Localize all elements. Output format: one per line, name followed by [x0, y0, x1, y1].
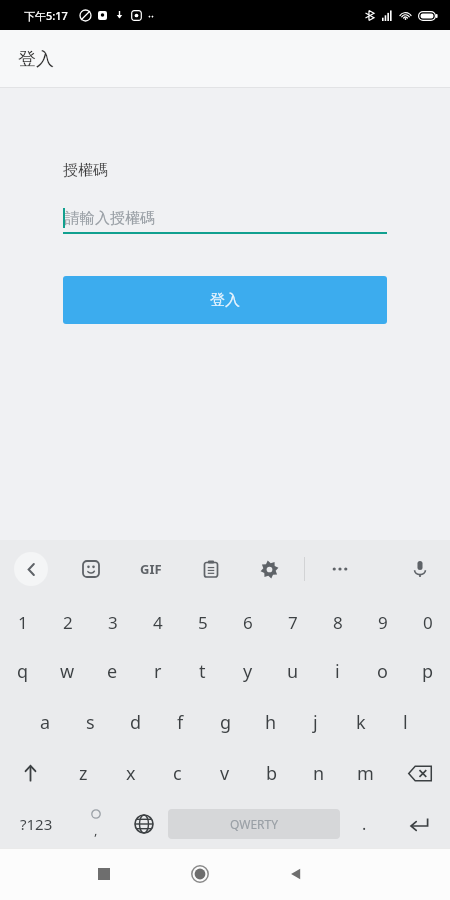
button[interactable]: Enter [388, 799, 450, 848]
staticText: . [362, 813, 367, 835]
button[interactable]: b [248, 748, 295, 799]
staticText: m [357, 761, 374, 786]
button[interactable]: f [158, 697, 203, 748]
staticText: ?123 [20, 814, 53, 834]
button[interactable]: Home [178, 852, 222, 896]
button[interactable]: p [405, 646, 450, 697]
staticText: t [199, 659, 206, 684]
staticText: e [107, 659, 118, 684]
staticText: q [17, 659, 29, 684]
button[interactable]: u [270, 646, 315, 697]
staticText: v [220, 761, 230, 786]
button[interactable]: Sticker [76, 554, 106, 584]
staticText: 4 [153, 611, 163, 634]
button[interactable]: e [90, 646, 135, 697]
staticText: o [377, 659, 388, 684]
button[interactable]: 7 [270, 598, 315, 646]
button[interactable]: 2 [45, 598, 90, 646]
button[interactable]: Shift [0, 748, 60, 799]
staticText: a [40, 710, 51, 735]
staticText: 5 [198, 611, 208, 634]
staticText: j [313, 710, 318, 735]
staticText: 授權碼 [63, 161, 108, 180]
button[interactable]: 6 [225, 598, 270, 646]
button[interactable]: a [22, 697, 68, 748]
button[interactable]: 0 [405, 598, 450, 646]
button[interactable]: j [293, 697, 338, 748]
button[interactable]: More options [325, 554, 355, 584]
button[interactable]: 9 [360, 598, 405, 646]
button[interactable]: q [0, 646, 45, 697]
staticText: s [86, 710, 95, 735]
button[interactable]: Backspace [389, 748, 450, 799]
button[interactable]: Change keyboard language [120, 799, 168, 848]
button[interactable]: ?123 [0, 799, 72, 848]
button[interactable]: GIF [134, 552, 168, 586]
staticText: b [266, 761, 278, 786]
staticText: p [422, 659, 434, 684]
button[interactable]: 5 [180, 598, 225, 646]
button[interactable]: c [154, 748, 201, 799]
staticText: x [126, 761, 136, 786]
button[interactable]: Back [274, 852, 318, 896]
button[interactable]: Emoji [72, 799, 120, 848]
staticText: 1 [18, 611, 28, 634]
button[interactable]: w [45, 646, 90, 697]
staticText: GIF [140, 560, 162, 578]
staticText: f [177, 710, 184, 735]
button[interactable]: o [360, 646, 405, 697]
button[interactable]: d [113, 697, 158, 748]
button[interactable]: l [383, 697, 428, 748]
staticText: 6 [243, 611, 253, 634]
button[interactable]: Settings [254, 554, 284, 584]
staticText: ·· [148, 8, 154, 23]
button[interactable]: x [107, 748, 154, 799]
button[interactable]: . [340, 799, 388, 848]
button[interactable]: y [225, 646, 270, 697]
button[interactable]: r [135, 646, 180, 697]
staticText: 2 [63, 611, 73, 634]
staticText: 7 [288, 611, 298, 634]
staticText: k [356, 710, 366, 735]
staticText: w [60, 659, 75, 684]
button[interactable]: v [201, 748, 248, 799]
button[interactable]: Voice input [404, 553, 436, 585]
button[interactable]: 3 [90, 598, 135, 646]
button[interactable]: s [68, 697, 113, 748]
button[interactable]: n [295, 748, 342, 799]
staticText: g [220, 710, 232, 735]
staticText: 登入 [18, 48, 54, 71]
staticText: 請輸入授權碼 [65, 209, 155, 228]
button[interactable]: 4 [135, 598, 180, 646]
button[interactable]: m [342, 748, 389, 799]
staticText: i [335, 659, 340, 684]
button[interactable]: 8 [315, 598, 360, 646]
button[interactable]: 請輸入授權碼 [63, 202, 387, 234]
staticText: l [403, 710, 408, 735]
button[interactable]: Recent apps [82, 852, 126, 896]
button[interactable]: 1 [0, 598, 45, 646]
staticText: 9 [378, 611, 388, 634]
staticText: 下午5:17 [24, 8, 68, 23]
staticText: 0 [423, 611, 433, 634]
staticText: h [265, 710, 277, 735]
button[interactable]: i [315, 646, 360, 697]
staticText: n [313, 761, 325, 786]
button[interactable]: z [60, 748, 107, 799]
staticText: c [173, 761, 182, 786]
button[interactable]: Space [168, 809, 340, 839]
button[interactable]: k [338, 697, 383, 748]
staticText: r [154, 659, 162, 684]
button[interactable]: g [203, 697, 248, 748]
button[interactable]: Back [14, 552, 48, 586]
button[interactable]: 登入 [63, 276, 387, 324]
staticText: z [79, 761, 88, 786]
button[interactable]: Clipboard [196, 554, 226, 584]
staticText: , [94, 821, 98, 839]
staticText: 8 [333, 611, 343, 634]
button[interactable]: t [180, 646, 225, 697]
staticText: y [243, 659, 253, 684]
button[interactable]: h [248, 697, 293, 748]
staticText: d [130, 710, 142, 735]
staticText: 登入 [210, 291, 240, 310]
